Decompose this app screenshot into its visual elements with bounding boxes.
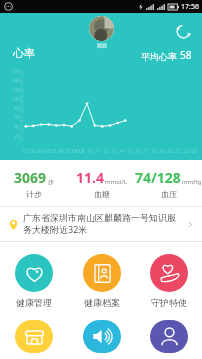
staticText: 20 [14,133,20,140]
staticText: 17:56 [181,2,199,12]
staticText: 00 [191,148,197,155]
staticText: 心率 [13,46,35,60]
staticText: 21 [175,148,181,155]
staticText: 计步 [26,189,42,199]
staticText: 03 [37,148,43,155]
staticText: 16 [135,148,141,155]
staticText: 11.4 [76,168,104,187]
staticText: 平均心率 [141,51,177,62]
staticText: 守护特使 [151,297,187,308]
staticText: 09 [79,148,85,155]
staticText: 160 [11,68,20,75]
button[interactable]: Profile avatar [89,16,114,41]
staticText: 15 [127,148,133,155]
staticText: 12 [103,148,109,155]
button[interactable]: 健康档案 [68,248,135,314]
staticText: 02 [30,148,36,155]
staticText: 06 [58,148,64,155]
button[interactable]: 健康管理 [0,248,68,314]
staticText: 13 [111,148,117,155]
button[interactable]: Refresh [172,20,194,42]
staticText: 01 [23,148,29,155]
staticText: 120 [11,87,20,94]
staticText: 妮妮 [97,42,107,48]
staticText: 22 [183,148,189,155]
staticText: 80 [14,105,20,112]
staticText: 60 [14,114,20,121]
staticText: 11 [95,148,101,155]
button[interactable]: 在线问诊 [68,314,135,359]
button[interactable]: 我的 [135,314,202,359]
staticText: 17 [143,148,149,155]
staticText: 100 [11,96,20,103]
staticText: 18 [151,148,157,155]
staticText: 04 [44,148,50,155]
staticText: 步 [48,178,54,186]
staticText: 140 [11,77,20,84]
staticText: 08 [72,148,78,155]
button[interactable]: 广东省深圳市南山区麒麟路一号知识服务大楼附近32米 [0,207,202,241]
staticText: 广东省深圳市南山区麒麟路一号知识服务大楼附近32米 [23,212,184,236]
staticText: 74/128 [135,168,181,187]
staticText: mmol/L [105,178,127,186]
staticText: 10 [87,148,93,155]
button[interactable]: 3069 [0,168,68,199]
staticText: 05 [51,148,57,155]
staticText: 40 [14,124,20,131]
staticText: 健康管理 [16,297,52,308]
staticText: mmHg [182,178,202,186]
staticText: 07 [65,148,71,155]
button[interactable]: 11.4 [68,168,135,199]
staticText: 3069 [14,168,47,187]
staticText: 20 [167,148,173,155]
staticText: 健康档案 [84,297,120,308]
staticText: 血压 [161,189,177,199]
staticText: 58 [180,48,192,62]
button[interactable]: 守护特使 [135,248,202,314]
staticText: 19 [159,148,165,155]
staticText: 14 [119,148,125,155]
staticText: 血糖 [94,189,110,199]
button[interactable]: 74/128 [135,168,202,199]
button[interactable]: 健康商城 [0,314,68,359]
